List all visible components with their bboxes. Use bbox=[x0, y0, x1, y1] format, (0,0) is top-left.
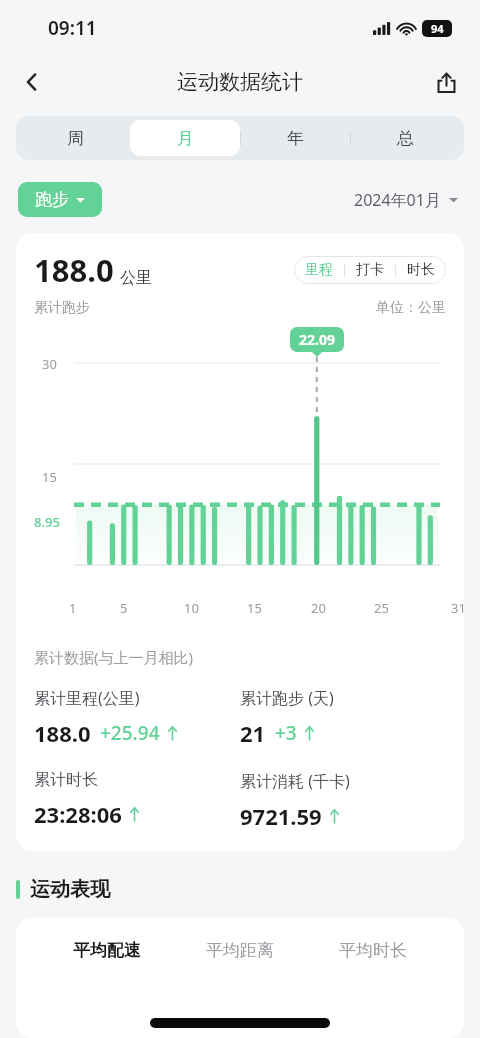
button[interactable]: 周 bbox=[20, 120, 130, 156]
staticText: 累计消耗 (千卡) bbox=[240, 770, 350, 792]
staticText: 累计里程(公里) bbox=[34, 687, 140, 709]
staticText: 31 bbox=[451, 599, 464, 617]
button[interactable]: 2024年01月 bbox=[350, 183, 462, 217]
button[interactable]: Back bbox=[10, 60, 54, 104]
staticText: 94 bbox=[431, 21, 444, 36]
staticText: 运动表现 bbox=[30, 877, 110, 902]
staticText: 2024年01月 bbox=[354, 189, 441, 211]
staticText: 累计跑步 (天) bbox=[240, 687, 334, 709]
staticText: 里程 bbox=[305, 261, 333, 279]
staticText: 20 bbox=[311, 599, 326, 617]
staticText: 单位：公里 bbox=[376, 299, 446, 317]
staticText: 5 bbox=[120, 599, 128, 617]
staticText: 周 bbox=[67, 128, 84, 149]
button[interactable]: 打卡 bbox=[345, 256, 395, 284]
button[interactable]: 平均配速 bbox=[65, 936, 149, 965]
button[interactable]: 平均距离 bbox=[198, 936, 282, 965]
staticText: 月 bbox=[177, 128, 194, 149]
staticText: 188.0 bbox=[34, 249, 114, 291]
staticText: 年 bbox=[287, 128, 304, 149]
staticText: 22.09 bbox=[299, 330, 335, 349]
button[interactable]: 里程 bbox=[294, 256, 344, 284]
staticText: 09:11 bbox=[48, 15, 97, 41]
staticText: 1 bbox=[69, 599, 77, 617]
staticText: +25.94 bbox=[100, 720, 160, 746]
staticText: 运动数据统计 bbox=[177, 69, 303, 95]
staticText: +3 bbox=[275, 720, 297, 746]
button[interactable]: 时长 bbox=[396, 256, 446, 284]
staticText: 9721.59 bbox=[240, 801, 322, 831]
staticText: 平均距离 bbox=[206, 940, 274, 961]
staticText: 总 bbox=[397, 128, 414, 149]
staticText: 平均时长 bbox=[339, 940, 407, 961]
staticText: 跑步 bbox=[35, 189, 69, 210]
staticText: 累计数据(与上一月相比) bbox=[34, 647, 194, 667]
staticText: 时长 bbox=[407, 261, 435, 279]
staticText: 累计跑步 bbox=[34, 299, 90, 317]
button[interactable]: 年 bbox=[240, 120, 350, 156]
staticText: 21 bbox=[240, 718, 266, 748]
button[interactable]: 平均时长 bbox=[331, 936, 415, 965]
button[interactable]: 总 bbox=[350, 120, 460, 156]
staticText: 30 bbox=[42, 355, 57, 373]
staticText: 8.95 bbox=[34, 513, 60, 531]
button[interactable]: Share bbox=[424, 60, 468, 104]
button[interactable]: 月 bbox=[130, 120, 240, 156]
staticText: 15 bbox=[247, 599, 262, 617]
staticText: 10 bbox=[184, 599, 199, 617]
staticText: 188.0 bbox=[34, 718, 91, 748]
staticText: 25 bbox=[374, 599, 389, 617]
staticText: 平均配速 bbox=[73, 940, 141, 961]
button[interactable]: 跑步 bbox=[18, 182, 102, 217]
staticText: 打卡 bbox=[356, 261, 384, 279]
staticText: 公里 bbox=[120, 268, 152, 288]
staticText: 23:28:06 bbox=[34, 799, 122, 829]
staticText: 累计时长 bbox=[34, 770, 98, 790]
staticText: 15 bbox=[42, 468, 57, 486]
